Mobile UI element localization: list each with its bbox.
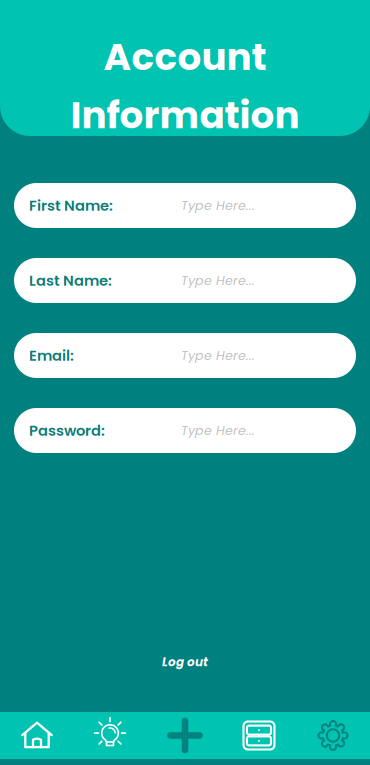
staticText: Type Here... (181, 272, 255, 289)
staticText: Password: (29, 420, 105, 441)
button[interactable]: Home (0, 712, 74, 759)
button[interactable]: Email: (14, 333, 356, 378)
staticText: Log out (162, 654, 208, 670)
button[interactable]: First Name: (14, 183, 356, 228)
button[interactable]: Log out (152, 652, 218, 672)
button[interactable]: Records (222, 712, 296, 759)
staticText: Type Here... (181, 197, 255, 214)
button[interactable]: Settings (296, 712, 370, 759)
staticText: Email: (29, 345, 74, 366)
button[interactable]: Add (148, 712, 222, 759)
staticText: Type Here... (181, 422, 255, 439)
button[interactable]: Ideas (74, 712, 148, 759)
button[interactable]: Password: (14, 408, 356, 453)
staticText: First Name: (29, 195, 113, 216)
staticText: Type Here... (181, 347, 255, 364)
staticText: Last Name: (29, 270, 112, 291)
staticText: Information (70, 89, 299, 141)
staticText: Account (103, 31, 266, 83)
button[interactable]: Last Name: (14, 258, 356, 303)
